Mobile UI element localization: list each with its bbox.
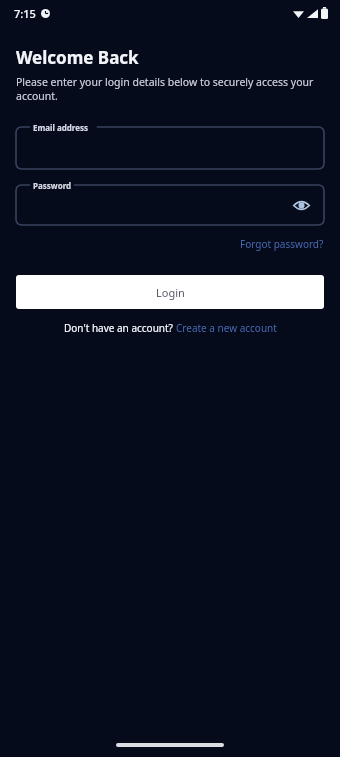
staticText: Please enter your login details below to… (16, 75, 324, 103)
button[interactable]: Show password (288, 192, 314, 218)
staticText: Don't have an account? (64, 321, 176, 335)
staticText: Password (33, 180, 72, 191)
button[interactable]: Forgot password? (240, 235, 324, 253)
staticText: 7:15 (14, 6, 36, 21)
staticText: Email address (33, 122, 89, 133)
button[interactable]: Login (16, 275, 324, 309)
staticText: Login (156, 285, 185, 300)
staticText: Welcome Back (16, 46, 139, 69)
button[interactable]: Create a new account (176, 321, 277, 335)
button[interactable]: Email address (16, 127, 324, 169)
button[interactable]: Password (16, 185, 324, 225)
